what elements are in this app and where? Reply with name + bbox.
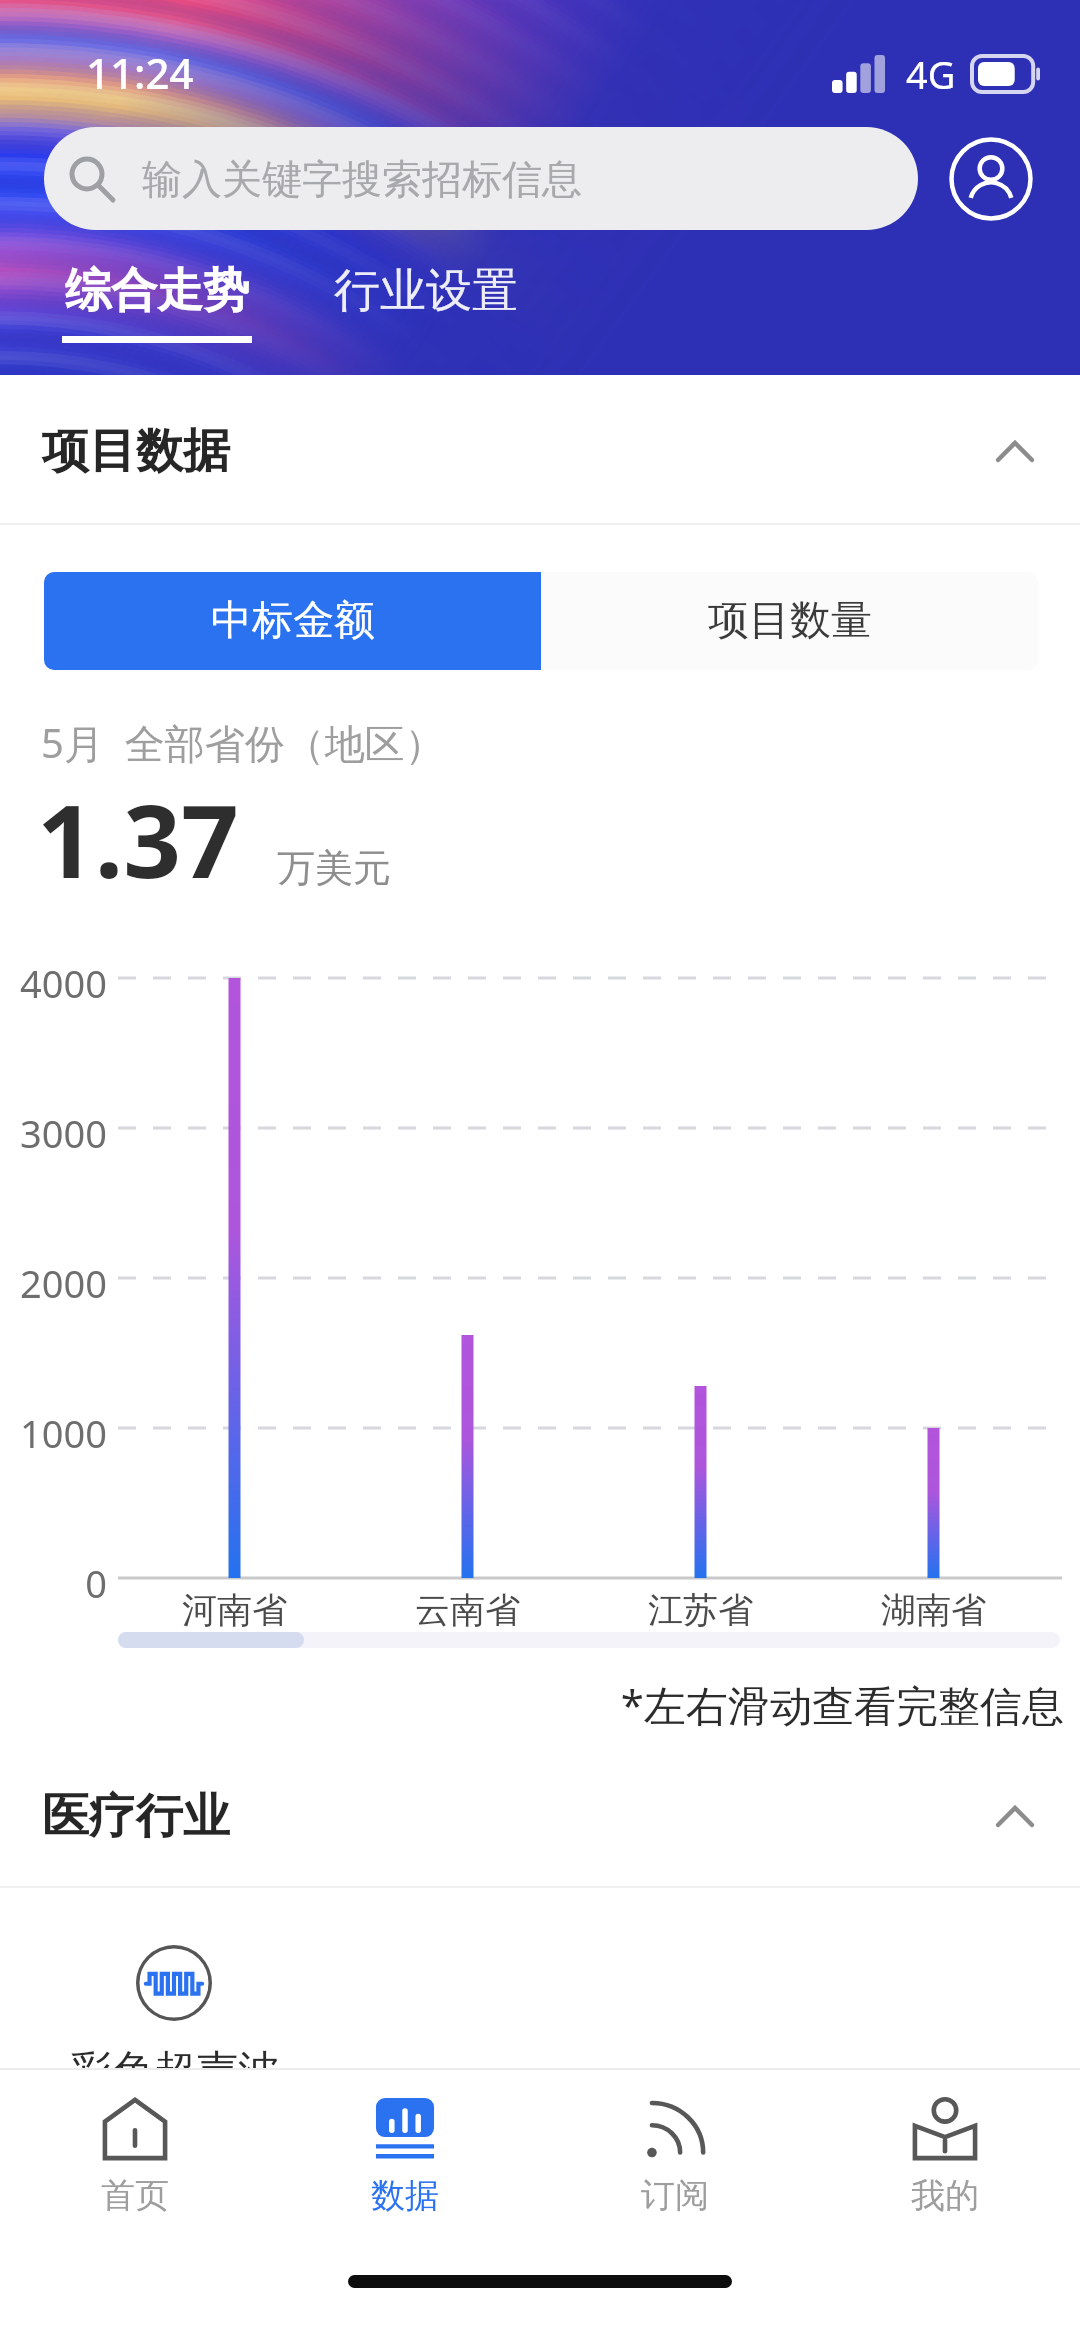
button[interactable]: 项目数据 <box>0 377 1080 525</box>
staticText: 中标金额 <box>211 595 375 647</box>
staticText: 首页 <box>101 2174 169 2217</box>
staticText: *左右滑动查看完整信息 <box>0 1676 1064 1733</box>
staticText: 万美元 <box>277 844 391 892</box>
staticText: 数据 <box>371 2174 439 2217</box>
staticText: 4000 <box>0 957 107 1009</box>
staticText: 3000 <box>0 1107 107 1159</box>
button[interactable]: 综合走势 <box>56 262 258 343</box>
staticText: 行业设置 <box>334 262 518 320</box>
staticText: 2000 <box>0 1257 107 1309</box>
staticText: 医疗行业 <box>42 1787 230 1846</box>
button[interactable]: 订阅 <box>540 2070 810 2262</box>
staticText: 综合走势 <box>65 262 249 320</box>
staticText: 11:24 <box>86 44 194 101</box>
button[interactable] <box>136 1945 212 2021</box>
staticText: 5月 全部省份（地区） <box>41 715 445 770</box>
staticText: 我的 <box>911 2174 979 2217</box>
button[interactable]: 数据 <box>270 2070 540 2262</box>
staticText: 1000 <box>0 1407 107 1459</box>
staticText: 1.37 <box>37 770 239 908</box>
staticText: 彩色超声波 <box>70 2045 280 2098</box>
staticText: 项目数据 <box>42 422 230 481</box>
button[interactable]: 行业设置 <box>328 262 524 320</box>
button[interactable]: 中标金额 <box>44 572 541 670</box>
staticText: 4G <box>906 48 956 100</box>
staticText: 江苏省 <box>648 1588 753 1632</box>
button[interactable]: 输入关键字搜索招标信息 <box>44 127 918 230</box>
staticText: 0 <box>0 1557 107 1609</box>
staticText: 输入关键字搜索招标信息 <box>142 154 582 204</box>
button[interactable]: 医疗行业 <box>0 1745 1080 1888</box>
button[interactable]: 首页 <box>0 2070 270 2262</box>
staticText: 湖南省 <box>881 1588 986 1632</box>
staticText: 河南省 <box>182 1588 287 1632</box>
button[interactable]: Profile <box>946 134 1036 224</box>
button[interactable]: 项目数量 <box>541 572 1038 670</box>
button[interactable]: 我的 <box>810 2070 1080 2262</box>
staticText: 云南省 <box>415 1588 520 1632</box>
staticText: 订阅 <box>641 2174 709 2217</box>
staticText: 项目数量 <box>708 595 872 647</box>
